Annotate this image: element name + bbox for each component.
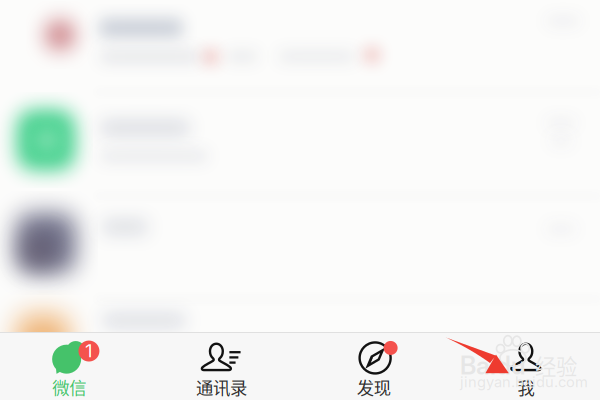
staticText: 微信 <box>52 374 86 400</box>
staticText: 我 <box>517 374 534 400</box>
staticText: 发现 <box>357 374 391 400</box>
button[interactable]: 发现 <box>297 327 450 400</box>
button[interactable]: 1 <box>0 327 145 400</box>
staticText: 1 <box>85 339 93 362</box>
staticText: Baidu <box>460 350 526 381</box>
staticText: 经验 <box>535 350 577 381</box>
button[interactable]: 通讯录 <box>145 327 297 400</box>
staticText: jingyan.baidu.com <box>460 373 588 391</box>
button[interactable]: 我 <box>450 327 600 400</box>
staticText: 通讯录 <box>196 374 247 400</box>
